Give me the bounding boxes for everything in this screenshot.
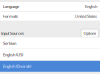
staticText: Options xyxy=(83,30,96,36)
button[interactable]: English (US) xyxy=(0,49,100,60)
staticText: Serbian xyxy=(3,40,16,46)
staticText: English (Dvorak) xyxy=(3,64,31,69)
button[interactable]: Serbian xyxy=(0,38,100,49)
staticText: English xyxy=(85,4,97,9)
button[interactable]: Options xyxy=(81,29,99,37)
staticText: English (US) xyxy=(3,52,23,57)
staticText: United States xyxy=(75,13,97,19)
staticText: Language xyxy=(3,4,19,9)
button[interactable]: Formats xyxy=(0,12,100,21)
button[interactable]: Language xyxy=(0,2,100,11)
staticText: Input Sources xyxy=(1,30,24,36)
button[interactable]: English (Dvorak) xyxy=(0,61,100,72)
staticText: Formats xyxy=(3,13,18,19)
